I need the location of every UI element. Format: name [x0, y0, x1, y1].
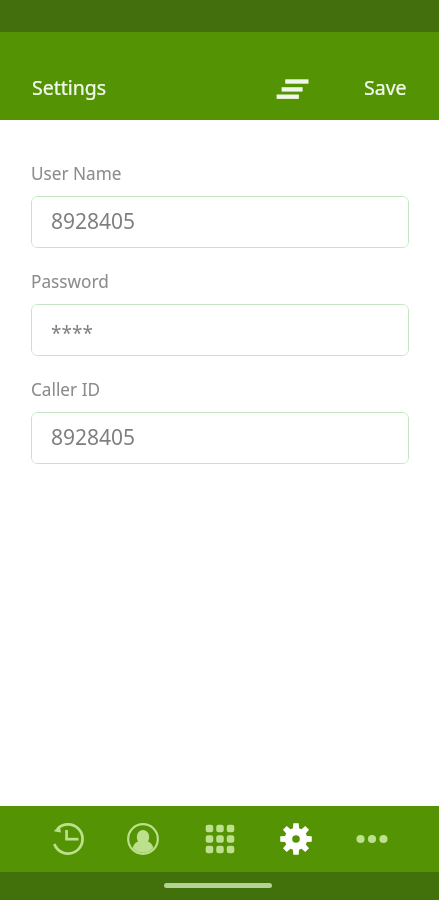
button[interactable]: 8928405: [31, 412, 409, 464]
staticText: 8928405: [51, 423, 136, 452]
staticText: User Name: [31, 162, 122, 185]
button[interactable]: Settings: [268, 811, 324, 867]
button[interactable]: History: [40, 811, 96, 867]
button[interactable]: Save: [352, 68, 419, 107]
staticText: Password: [31, 270, 109, 293]
staticText: ****: [51, 320, 93, 346]
button[interactable]: 8928405: [31, 196, 409, 248]
button[interactable]: Dialpad: [192, 811, 248, 867]
button[interactable]: Sort: [260, 62, 316, 118]
button[interactable]: ****: [31, 304, 409, 356]
staticText: 8928405: [51, 207, 136, 236]
button[interactable]: Settings: [20, 68, 119, 107]
button[interactable]: More: [344, 811, 400, 867]
button[interactable]: Account: [115, 811, 171, 867]
staticText: Save: [364, 74, 407, 101]
staticText: Settings: [32, 74, 107, 101]
staticText: Caller ID: [31, 378, 101, 401]
